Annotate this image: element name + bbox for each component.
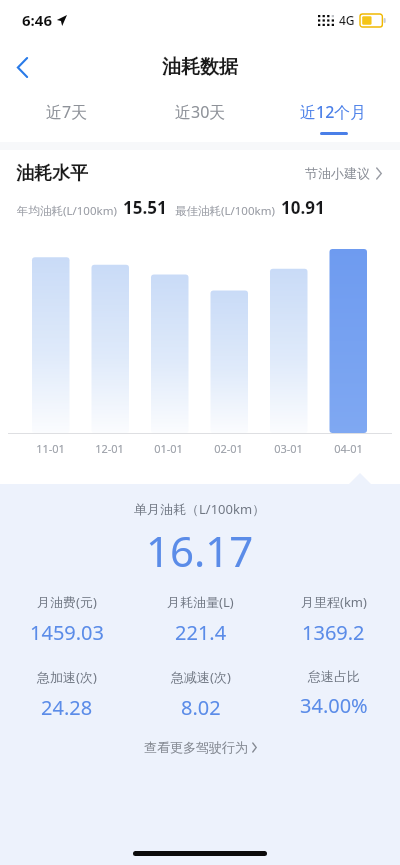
button[interactable]: Back xyxy=(0,45,44,89)
staticText: 02-01 xyxy=(214,441,243,456)
staticText: 油耗数据 xyxy=(162,55,238,79)
staticText: 急减速(次) xyxy=(171,668,231,686)
button[interactable]: 近7天 xyxy=(0,94,134,142)
staticText: 急加速(次) xyxy=(37,668,97,686)
staticText: 单月油耗（L/100km） xyxy=(134,500,266,518)
button[interactable]: 查看更多驾驶行为 xyxy=(0,739,400,755)
staticText: 24.28 xyxy=(41,694,93,721)
staticText: 12-01 xyxy=(95,441,124,456)
staticText: 最佳油耗(L/100km) xyxy=(175,203,275,219)
staticText: 月油费(元) xyxy=(37,593,97,611)
staticText: 近12个月 xyxy=(300,101,367,123)
staticText: 近30天 xyxy=(175,101,226,123)
staticText: 8.02 xyxy=(181,694,221,721)
staticText: 04-01 xyxy=(334,441,363,456)
staticText: 油耗水平 xyxy=(16,162,88,185)
staticText: 15.51 xyxy=(123,196,167,219)
staticText: 16.17 xyxy=(146,522,254,579)
staticText: 月里程(km) xyxy=(301,593,367,611)
staticText: 34.00% xyxy=(300,692,368,719)
button[interactable]: 近30天 xyxy=(134,94,267,142)
staticText: 月耗油量(L) xyxy=(167,593,234,611)
button[interactable]: 近12个月 xyxy=(267,94,400,142)
staticText: 6:46 xyxy=(22,10,52,30)
staticText: 221.4 xyxy=(175,619,227,646)
staticText: 节油小建议 xyxy=(305,165,370,181)
staticText: 年均油耗(L/100km) xyxy=(17,203,117,219)
staticText: 近7天 xyxy=(46,101,88,123)
staticText: 查看更多驾驶行为 xyxy=(144,739,248,755)
staticText: 4G xyxy=(339,12,355,28)
staticText: 1459.03 xyxy=(30,619,104,646)
staticText: 03-01 xyxy=(274,441,303,456)
button[interactable]: 节油小建议 xyxy=(303,161,384,185)
staticText: 11-01 xyxy=(36,441,65,456)
staticText: 1369.2 xyxy=(302,619,365,646)
staticText: 怠速占比 xyxy=(308,668,360,684)
staticText: 10.91 xyxy=(281,196,325,219)
staticText: 01-01 xyxy=(154,441,183,456)
